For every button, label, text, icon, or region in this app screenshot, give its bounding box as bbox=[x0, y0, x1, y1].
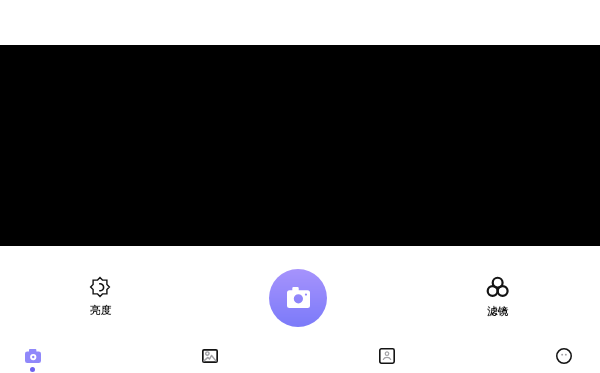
button[interactable]: 亮度 bbox=[69, 277, 131, 317]
button[interactable]: Take photo bbox=[269, 269, 327, 327]
button[interactable]: 滤镜 bbox=[466, 277, 528, 318]
button[interactable]: Camera bbox=[11, 339, 55, 373]
staticText: 亮度 bbox=[90, 304, 111, 317]
staticText: 滤镜 bbox=[487, 305, 508, 318]
button[interactable]: Profile bbox=[365, 339, 409, 373]
button[interactable]: More bbox=[542, 339, 586, 373]
button[interactable]: Gallery bbox=[188, 339, 232, 373]
